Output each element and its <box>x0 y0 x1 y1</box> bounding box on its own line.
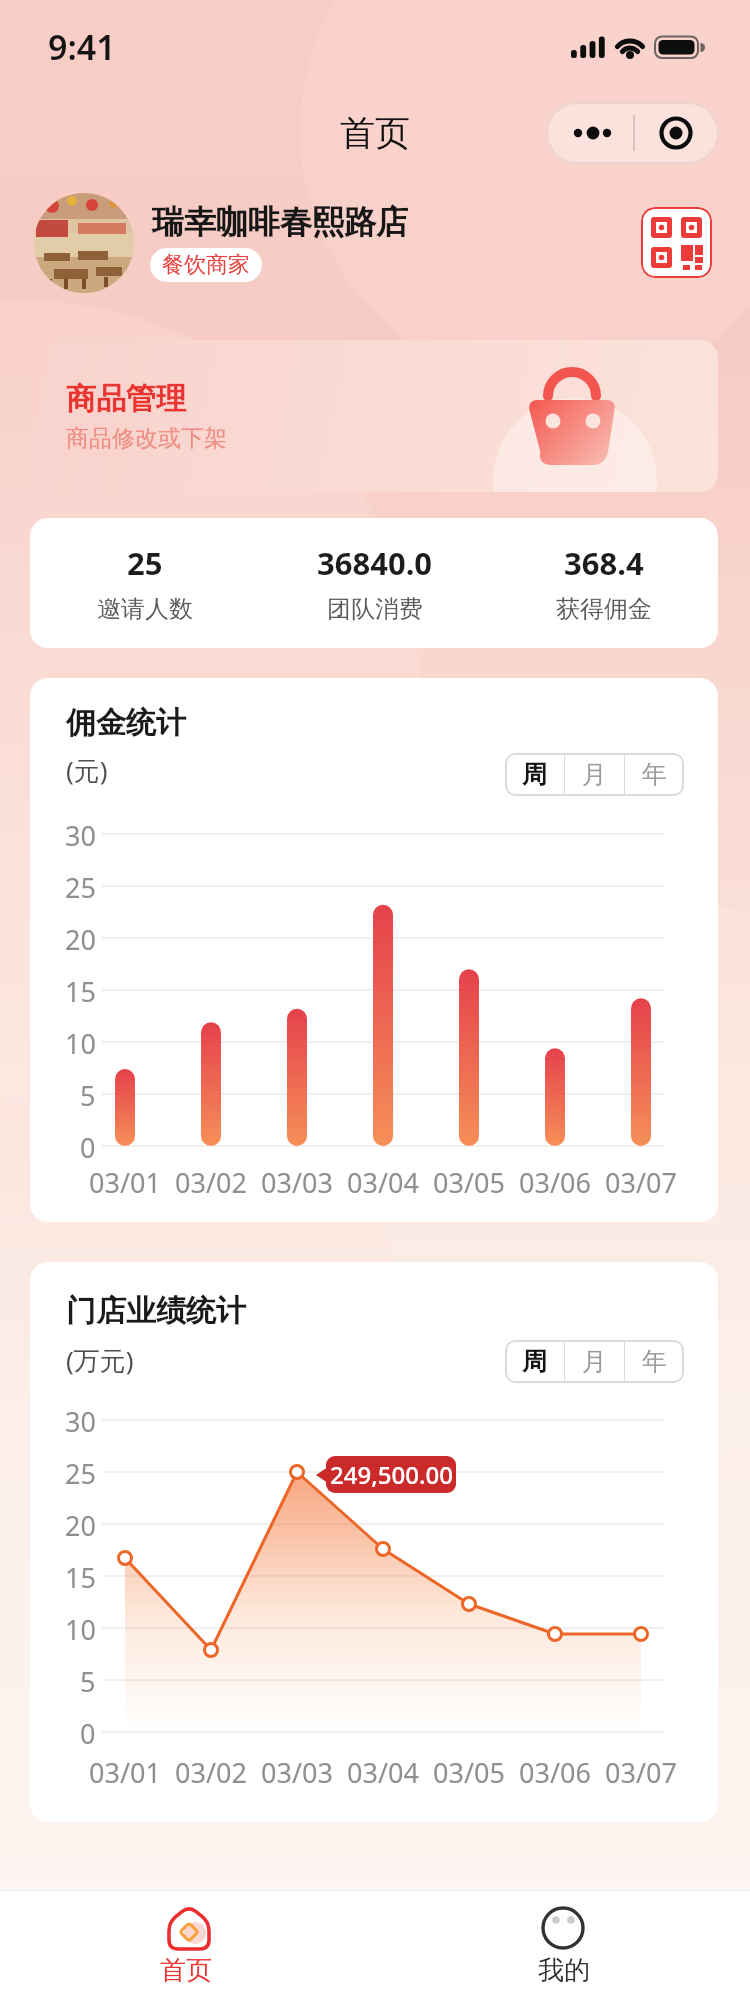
staticText: 03/02 <box>175 1164 247 1201</box>
staticText: 餐饮商家 <box>162 251 250 279</box>
staticText: 03/05 <box>433 1164 505 1201</box>
staticText: 年 <box>642 1346 667 1377</box>
staticText: 佣金统计 <box>66 704 186 742</box>
staticText: 首页 <box>160 1954 212 1987</box>
staticText: 9:41 <box>48 24 116 70</box>
staticText: (元) <box>66 752 108 788</box>
staticText: 5 <box>80 1077 96 1111</box>
staticText: 10 <box>65 1025 96 1059</box>
staticText: 36840.0 <box>317 542 433 584</box>
staticText: 15 <box>65 1559 96 1593</box>
staticText: 03/02 <box>175 1754 247 1791</box>
staticText: 25 <box>127 542 163 584</box>
staticText: 周 <box>522 759 547 790</box>
staticText: 03/06 <box>519 1754 591 1791</box>
button[interactable] <box>641 207 712 278</box>
staticText: 03/05 <box>433 1754 505 1791</box>
staticText: 我的 <box>538 1954 590 1987</box>
staticText: 20 <box>65 1507 96 1541</box>
staticText: 368.4 <box>564 542 644 584</box>
button[interactable]: 首页 <box>96 1890 276 2000</box>
staticText: 年 <box>642 759 667 790</box>
staticText: 03/01 <box>89 1164 161 1201</box>
staticText: 月 <box>582 1346 607 1377</box>
staticText: 商品修改或下架 <box>66 424 227 453</box>
button[interactable]: 月 <box>565 753 624 796</box>
staticText: 邀请人数 <box>97 594 193 624</box>
button[interactable] <box>546 102 719 164</box>
staticText: 03/01 <box>89 1754 161 1791</box>
staticText: 0 <box>80 1715 96 1749</box>
staticText: 25 <box>65 1455 96 1489</box>
button[interactable]: 周 <box>505 1340 564 1383</box>
staticText: 25 <box>65 869 96 903</box>
button[interactable]: 25 <box>30 518 260 648</box>
staticText: 0 <box>80 1129 96 1163</box>
staticText: 03/06 <box>519 1164 591 1201</box>
staticText: 周 <box>522 1346 547 1377</box>
staticText: 商品管理 <box>66 380 186 418</box>
staticText: 15 <box>65 973 96 1007</box>
staticText: 门店业绩统计 <box>66 1292 246 1330</box>
staticText: 5 <box>80 1663 96 1697</box>
staticText: 30 <box>65 817 96 851</box>
staticText: 03/04 <box>347 1754 419 1791</box>
button[interactable]: 36840.0 <box>260 518 489 648</box>
button[interactable]: 周 <box>505 753 564 796</box>
staticText: 团队消费 <box>327 594 423 624</box>
staticText: 03/03 <box>261 1164 333 1201</box>
button[interactable]: 我的 <box>474 1890 654 2000</box>
button[interactable]: 月 <box>565 1340 624 1383</box>
button[interactable]: 年 <box>625 1340 684 1383</box>
staticText: 03/07 <box>605 1754 677 1791</box>
button[interactable]: 商品管理 <box>30 340 718 492</box>
staticText: 瑞幸咖啡春熙路店 <box>152 202 408 242</box>
staticText: 首页 <box>340 111 410 155</box>
staticText: 获得佣金 <box>556 594 652 624</box>
button[interactable]: 年 <box>625 753 684 796</box>
staticText: 03/07 <box>605 1164 677 1201</box>
staticText: 30 <box>65 1403 96 1437</box>
button[interactable] <box>34 193 134 293</box>
button[interactable]: 368.4 <box>489 518 718 648</box>
staticText: 10 <box>65 1611 96 1645</box>
staticText: 03/03 <box>261 1754 333 1791</box>
staticText: (万元) <box>66 1342 134 1378</box>
staticText: 20 <box>65 921 96 955</box>
staticText: 249,500.00 <box>330 1458 453 1491</box>
staticText: 03/04 <box>347 1164 419 1201</box>
staticText: 月 <box>582 759 607 790</box>
